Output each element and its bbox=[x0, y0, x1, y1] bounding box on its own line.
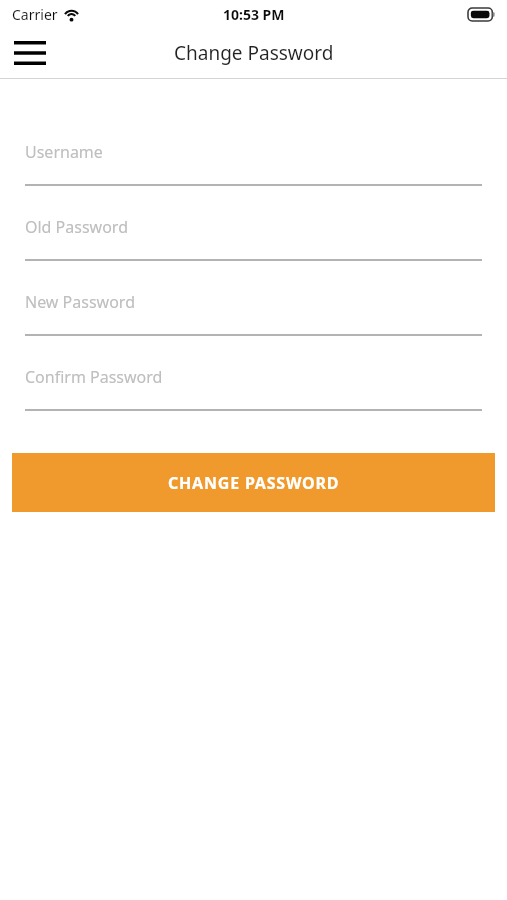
staticText: Carrier bbox=[12, 5, 58, 24]
staticText: Confirm Password bbox=[25, 366, 163, 388]
button[interactable]: Confirm Password bbox=[25, 362, 482, 411]
button[interactable]: Open navigation menu bbox=[8, 31, 52, 75]
button[interactable]: CHANGE PASSWORD bbox=[12, 453, 495, 512]
staticText: CHANGE PASSWORD bbox=[168, 472, 340, 494]
button[interactable]: New Password bbox=[25, 287, 482, 336]
staticText: Old Password bbox=[25, 216, 128, 238]
button[interactable]: Username bbox=[25, 137, 482, 186]
staticText: Username bbox=[25, 141, 103, 163]
staticText: Change Password bbox=[174, 40, 334, 66]
button[interactable]: Old Password bbox=[25, 212, 482, 261]
staticText: New Password bbox=[25, 291, 135, 313]
staticText: 10:53 PM bbox=[223, 5, 285, 24]
